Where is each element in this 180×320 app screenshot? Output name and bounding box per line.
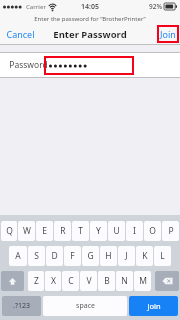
button[interactable]: Join: [129, 296, 178, 316]
button[interactable]: N: [116, 271, 133, 291]
button[interactable]: B: [98, 271, 115, 291]
button[interactable]: M: [134, 271, 151, 291]
staticText: R: [60, 225, 66, 237]
button[interactable]: O: [144, 221, 161, 241]
staticText: Q: [6, 225, 13, 237]
staticText: .?123: [13, 301, 30, 311]
staticText: H: [105, 250, 112, 262]
button[interactable]: T: [72, 221, 89, 241]
button[interactable]: J: [118, 246, 135, 266]
staticText: G: [87, 250, 94, 262]
button[interactable]: V: [80, 271, 97, 291]
staticText: X: [51, 275, 56, 287]
staticText: I: [133, 225, 136, 237]
button[interactable]: R: [54, 221, 71, 241]
button[interactable]: S: [28, 246, 45, 266]
staticText: Enter the password for “BrotherPrinter”: [34, 15, 146, 23]
staticText: O: [149, 225, 156, 237]
button[interactable]: Shift: [1, 271, 24, 291]
staticText: W: [23, 225, 31, 237]
staticText: C: [68, 275, 74, 287]
staticText: Join: [160, 28, 176, 40]
button[interactable]: U: [108, 221, 125, 241]
staticText: A: [15, 250, 21, 262]
staticText: F: [70, 250, 75, 262]
staticText: T: [78, 225, 83, 237]
button[interactable]: space: [43, 296, 127, 316]
staticText: 14:05: [81, 2, 99, 12]
button[interactable]: Z: [28, 271, 44, 291]
button[interactable]: E: [36, 221, 53, 241]
button[interactable]: I: [126, 221, 143, 241]
button[interactable]: A: [9, 246, 27, 266]
button[interactable]: D: [46, 246, 63, 266]
staticText: M: [139, 275, 147, 287]
button[interactable]: Cancel: [0, 25, 41, 43]
button[interactable]: Backspace: [155, 271, 179, 291]
staticText: P: [168, 225, 174, 237]
staticText: Z: [34, 275, 39, 287]
staticText: B: [104, 275, 110, 287]
button[interactable]: L: [154, 246, 171, 266]
staticText: Cancel: [6, 28, 35, 40]
staticText: space: [76, 301, 95, 311]
button[interactable]: Q: [1, 221, 17, 241]
staticText: U: [113, 225, 120, 237]
staticText: Y: [96, 225, 101, 237]
staticText: N: [121, 275, 128, 287]
staticText: Password: [9, 59, 48, 71]
button[interactable]: K: [136, 246, 153, 266]
staticText: J: [125, 250, 128, 262]
staticText: S: [34, 250, 39, 262]
button[interactable]: .?123: [2, 296, 41, 316]
staticText: K: [142, 250, 148, 262]
staticText: Carrier: [26, 3, 46, 11]
staticText: E: [42, 225, 47, 237]
button[interactable]: Y: [90, 221, 107, 241]
staticText: Enter Password: [53, 28, 127, 41]
staticText: D: [51, 250, 58, 262]
button[interactable]: Password: [0, 53, 180, 77]
button[interactable]: X: [45, 271, 61, 291]
staticText: V: [86, 275, 92, 287]
button[interactable]: F: [64, 246, 81, 266]
staticText: Join: [147, 301, 161, 311]
button[interactable]: Join: [157, 25, 179, 43]
button[interactable]: H: [100, 246, 117, 266]
staticText: L: [160, 250, 165, 262]
button[interactable]: P: [162, 221, 179, 241]
button[interactable]: W: [18, 221, 35, 241]
button[interactable]: C: [62, 271, 79, 291]
staticText: 92%: [149, 2, 162, 11]
button[interactable]: G: [82, 246, 99, 266]
